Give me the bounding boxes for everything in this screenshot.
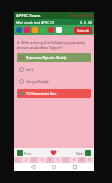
staticText: P.V.Narasimha Rao — [26, 91, 57, 96]
staticText: 8 — [73, 158, 75, 162]
button[interactable]: Home — [52, 165, 56, 169]
button[interactable]: Back — [31, 165, 35, 169]
staticText: Mini mock test APSC 01 — [16, 20, 55, 25]
button[interactable]: 7 — [62, 157, 70, 163]
staticText: 0 4 40 — [80, 20, 92, 25]
button[interactable]: Next — [76, 150, 91, 156]
staticText: 5 — [49, 158, 51, 162]
button[interactable]: 10 — [86, 157, 94, 163]
staticText: 9 — [81, 158, 83, 162]
button[interactable]: 8 — [70, 157, 78, 163]
button[interactable]: 1 — [14, 157, 22, 163]
button[interactable]: icon — [56, 27, 62, 33]
staticText: Next — [76, 151, 84, 156]
button[interactable]: 5 — [46, 157, 54, 163]
staticText: 3 — [33, 158, 35, 162]
button[interactable]: Favorite — [50, 149, 57, 156]
staticText: 10 — [88, 158, 92, 162]
button[interactable]: Prev — [17, 150, 32, 156]
staticText: mt'd — [26, 67, 34, 72]
staticText: Time left 5:4 — [70, 13, 92, 18]
staticText: Rajamata Ripudra Reddy — [26, 55, 67, 60]
staticText: 6 — [57, 158, 59, 162]
button[interactable]: icon — [40, 27, 46, 33]
staticText: Prev — [24, 151, 32, 156]
button[interactable]: Rajamata Ripudra Reddy — [17, 53, 91, 62]
staticText: 4. Who among the following popularly kno… — [17, 40, 91, 50]
staticText: 7 — [65, 158, 67, 162]
button[interactable]: icon — [48, 27, 54, 33]
staticText: 1 — [17, 158, 19, 162]
button[interactable]: P.V.Narasimha Rao — [17, 89, 91, 98]
button[interactable]: 6 — [54, 157, 62, 163]
button[interactable]: Ganjua Reddy — [17, 77, 91, 86]
button[interactable]: Submit — [74, 27, 92, 34]
button[interactable]: 3 — [30, 157, 38, 163]
staticText: APPSC Exam — [16, 13, 41, 18]
staticText: Ganjua Reddy — [26, 79, 49, 84]
button[interactable]: 9 — [78, 157, 86, 163]
staticText: Submit — [77, 28, 89, 33]
button[interactable]: icon — [32, 27, 38, 33]
button[interactable]: icon — [16, 27, 22, 33]
button[interactable]: 4 — [38, 157, 46, 163]
button[interactable]: Recents — [73, 165, 77, 169]
button[interactable]: 2 — [22, 157, 30, 163]
button[interactable]: mt'd — [17, 65, 91, 74]
staticText: 2 — [25, 158, 27, 162]
button[interactable]: icon — [24, 27, 30, 33]
staticText: 4 — [41, 158, 43, 162]
